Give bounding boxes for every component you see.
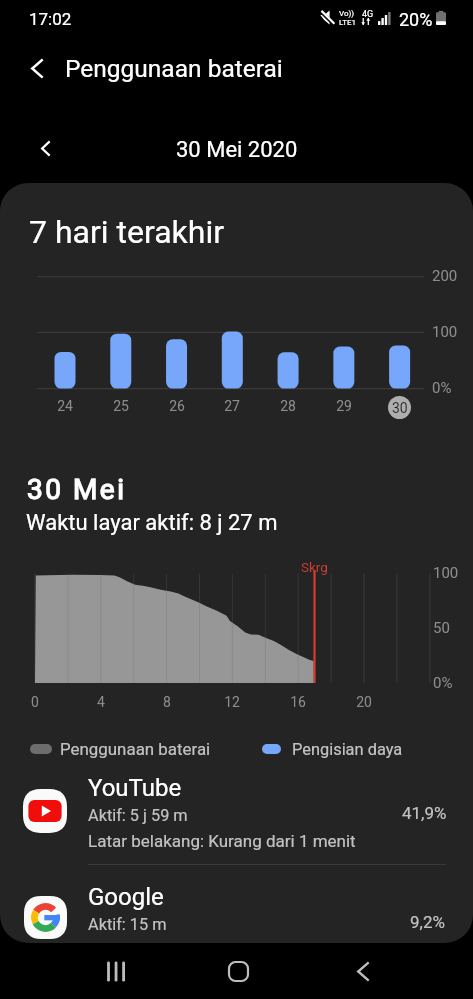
staticText: 200	[432, 267, 458, 285]
staticText: Waktu layar aktif: 8 j 27 m	[26, 510, 278, 536]
staticText: 27	[224, 398, 240, 414]
staticText: 0	[31, 694, 39, 710]
staticText: Latar belakang: 11 j 16 m	[88, 939, 279, 959]
staticText: 30 Mei	[27, 473, 127, 506]
button[interactable]: Back	[333, 943, 393, 999]
staticText: Penggunaan baterai	[60, 739, 211, 759]
staticText: 17:02	[29, 9, 72, 29]
staticText: 9,2%	[410, 912, 445, 932]
staticText: 30 Mei 2020	[176, 137, 298, 163]
button[interactable]: Back	[0, 45, 473, 91]
staticText: 100	[432, 323, 458, 341]
staticText: LTE1	[339, 18, 357, 27]
staticText: 26	[169, 398, 185, 414]
staticText: YouTube	[88, 774, 182, 802]
staticText: 12	[224, 694, 240, 710]
staticText: 30	[392, 400, 408, 416]
button[interactable]: Previous day	[22, 122, 68, 168]
staticText: 29	[336, 398, 352, 414]
staticText: Aktif: 15 m	[88, 915, 167, 934]
button[interactable]	[0, 872, 473, 943]
button[interactable]: Pengisian daya	[262, 738, 403, 760]
staticText: 50	[433, 619, 450, 637]
staticText: 0%	[432, 379, 452, 397]
staticText: Pengisian daya	[292, 740, 403, 759]
staticText: 25	[113, 398, 129, 414]
staticText: 4G	[362, 9, 374, 20]
staticText: Aktif: 5 j 59 m	[88, 806, 188, 825]
button[interactable]: Home	[208, 943, 268, 999]
staticText: 20%	[399, 9, 433, 30]
staticText: Skrg	[301, 559, 328, 575]
staticText: 28	[280, 398, 296, 414]
staticText: 4	[97, 694, 105, 710]
staticText: 0%	[433, 674, 453, 692]
staticText: 8	[163, 694, 171, 710]
staticText: Google	[88, 883, 164, 911]
button[interactable]: Penggunaan baterai	[30, 738, 211, 760]
staticText: Latar belakang: Kurang dari 1 menit	[88, 831, 356, 851]
button[interactable]: Recent apps	[86, 943, 146, 999]
staticText: 16	[290, 694, 306, 710]
staticText: 100	[433, 564, 459, 582]
staticText: 24	[57, 398, 73, 414]
staticText: 41,9%	[402, 803, 447, 823]
staticText: Penggunaan baterai	[65, 54, 283, 83]
staticText: 20	[356, 694, 372, 710]
staticText: 7 hari terakhir	[29, 213, 225, 251]
button[interactable]	[0, 772, 473, 862]
staticText: Vo))	[339, 9, 355, 18]
